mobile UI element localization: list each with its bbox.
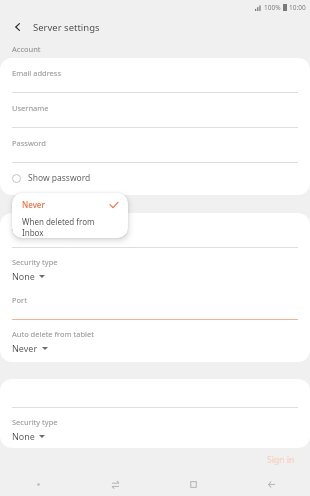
button[interactable]: Security type [0,408,310,445]
staticText: Account [12,44,41,54]
button[interactable]: POP3 server [0,213,310,248]
staticText: When deleted from Inbox [22,216,118,238]
button[interactable]: Sign in [264,451,298,469]
button[interactable]: Email address [0,58,310,93]
staticText: Security type [12,417,58,427]
button[interactable]: Username [0,93,310,128]
staticText: None [12,270,35,282]
button[interactable]: Recents [154,472,232,496]
staticText: Password [12,138,46,148]
staticText: None [12,430,35,442]
staticText: Show password [28,172,91,184]
button[interactable]: When deleted from Inbox [12,216,128,238]
staticText: Auto delete from tablet [12,329,94,339]
button[interactable]: Security type [0,248,310,285]
button[interactable]: Back [9,18,27,36]
staticText: Server settings [33,21,100,34]
button[interactable]: Never [12,193,128,216]
staticText: Port [12,295,27,305]
staticText: Never [12,342,38,354]
staticText: Username [12,103,49,113]
staticText: Email address [12,68,62,78]
button[interactable]: Show password [0,163,310,195]
staticText: Incoming server [12,199,70,209]
staticText: 10:00 [289,3,306,12]
button[interactable]: Switch keyboard [77,472,154,496]
button[interactable]: Auto delete from tablet [0,320,310,362]
button[interactable]: Port [0,285,310,320]
staticText: POP3 server [12,223,56,233]
button[interactable]: Back [232,472,310,496]
staticText: 100% [264,3,281,12]
button[interactable]: Password [0,128,310,163]
staticText: Security type [12,257,58,267]
staticText: Sign in [267,454,295,466]
staticText: Never [22,199,45,210]
